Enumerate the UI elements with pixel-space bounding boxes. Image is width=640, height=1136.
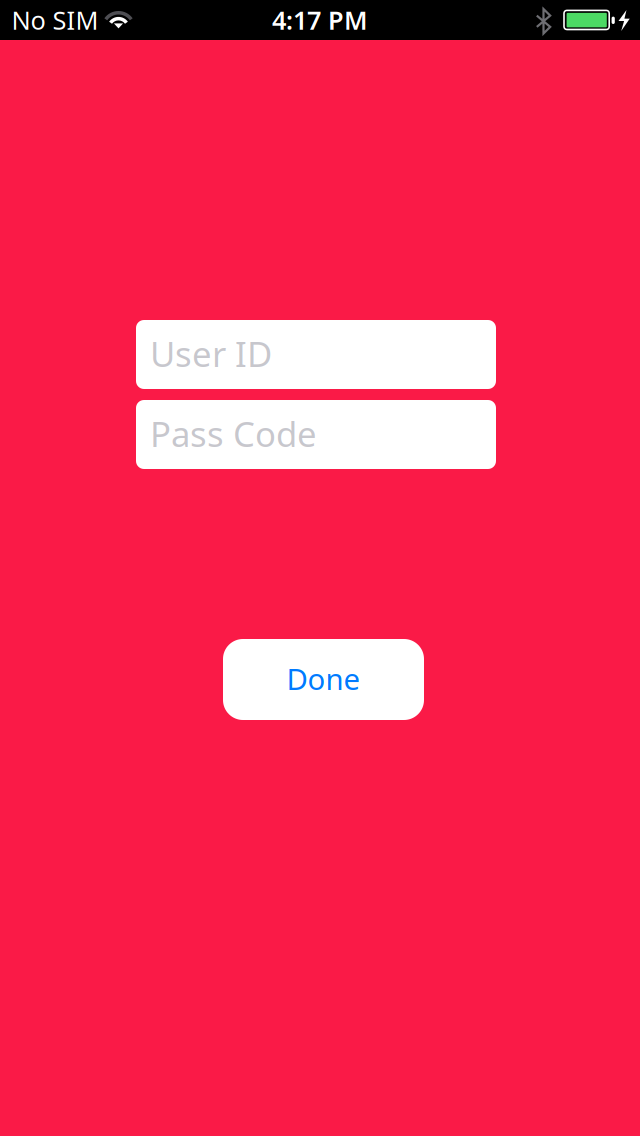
staticText: Done: [286, 659, 360, 698]
button[interactable]: User ID: [136, 320, 496, 389]
button[interactable]: Done: [223, 639, 424, 720]
staticText: 4:17 PM: [272, 3, 368, 37]
button[interactable]: Pass Code: [136, 400, 496, 469]
staticText: User ID: [150, 330, 272, 376]
staticText: Pass Code: [150, 410, 317, 456]
staticText: No SIM: [11, 3, 98, 37]
